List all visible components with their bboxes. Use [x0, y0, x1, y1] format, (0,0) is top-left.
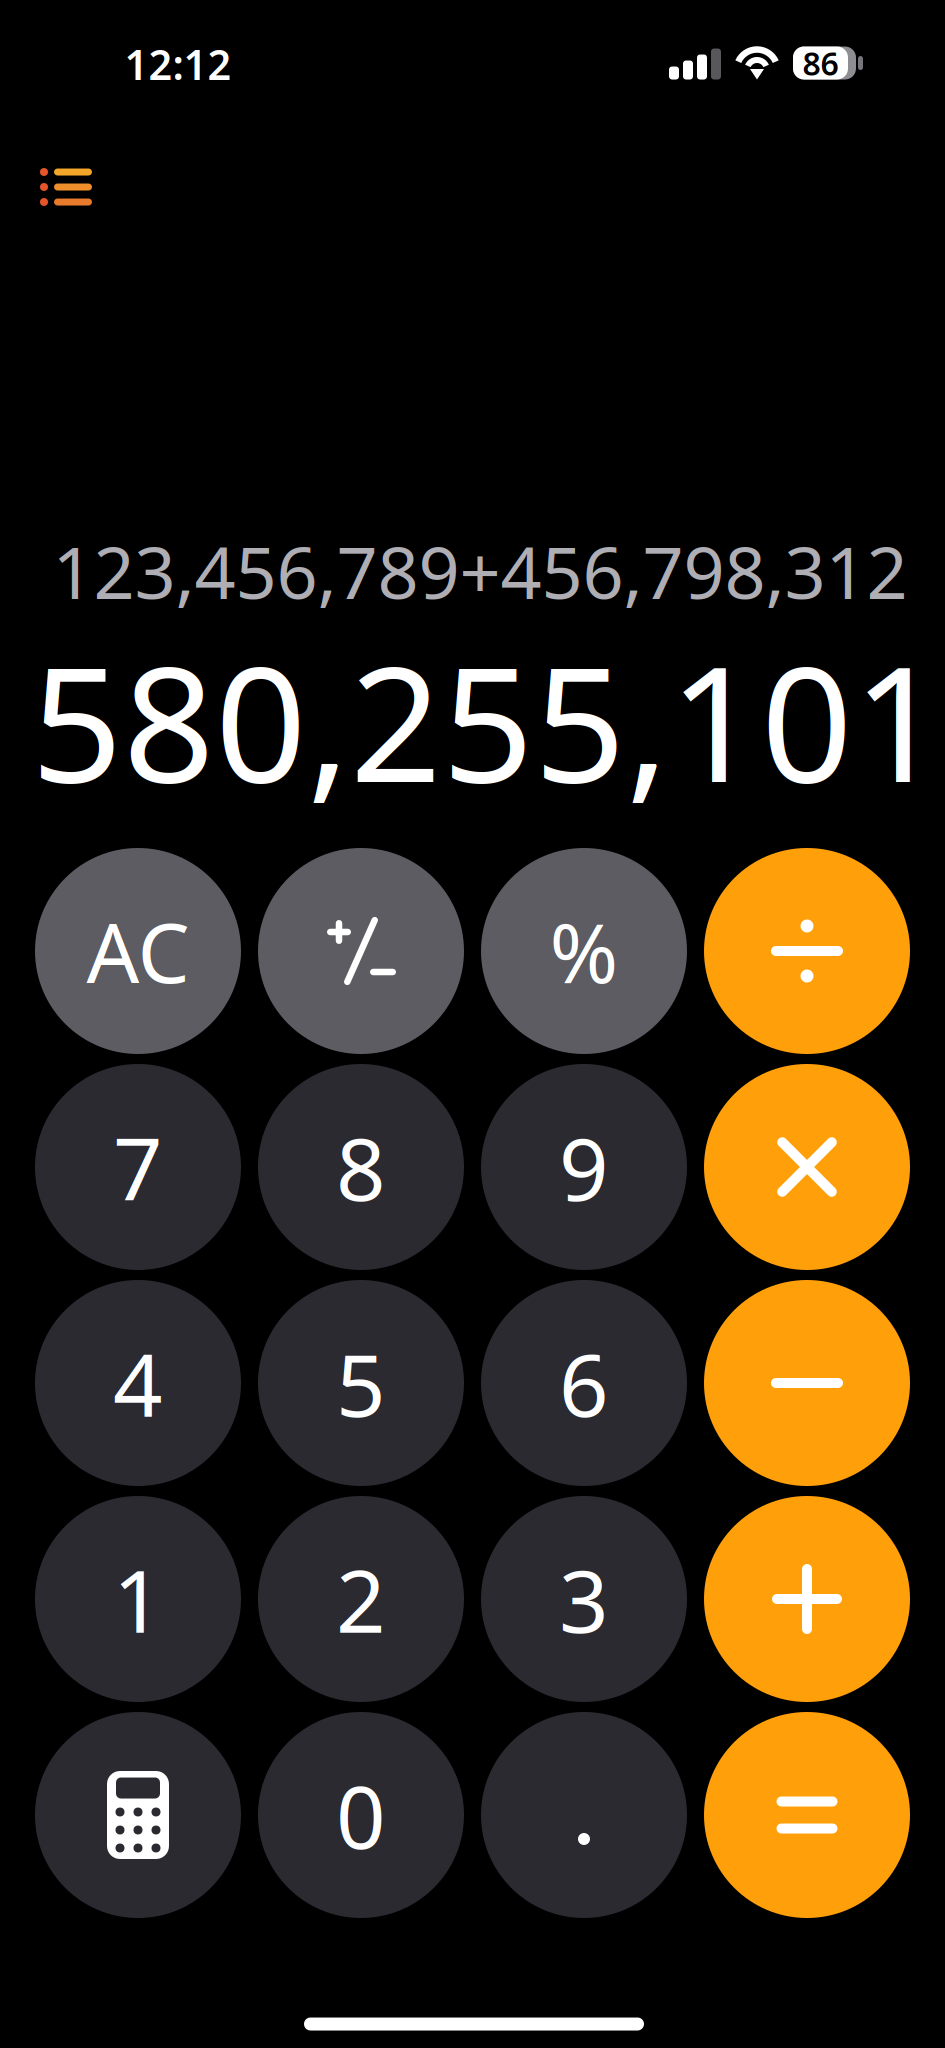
button[interactable]: Decimal point — [481, 1712, 687, 1918]
button[interactable]: AC — [35, 848, 241, 1054]
button[interactable]: 6 — [481, 1280, 687, 1486]
button[interactable]: Divide — [704, 848, 910, 1054]
staticText: 2 — [336, 1541, 386, 1657]
staticText: 1 — [113, 1541, 163, 1657]
button[interactable]: Subtract — [704, 1280, 910, 1486]
staticText: AC — [86, 896, 189, 1006]
button[interactable]: 7 — [35, 1064, 241, 1270]
button[interactable]: 8 — [258, 1064, 464, 1270]
button[interactable]: Add — [704, 1496, 910, 1702]
staticText: % — [549, 896, 618, 1006]
staticText: 9 — [559, 1109, 609, 1225]
staticText: 86 — [802, 42, 838, 84]
staticText: 7 — [113, 1109, 163, 1225]
staticText: 123,456,789+456,798,312 — [52, 523, 907, 619]
button[interactable]: 9 — [481, 1064, 687, 1270]
staticText: 6 — [559, 1325, 609, 1441]
staticText: 8 — [336, 1109, 386, 1225]
button[interactable]: 4 — [35, 1280, 241, 1486]
staticText: 12:12 — [124, 37, 231, 91]
button[interactable]: 5 — [258, 1280, 464, 1486]
staticText: 0 — [336, 1757, 386, 1873]
staticText: 5 — [336, 1325, 386, 1441]
button[interactable]: Calculator mode — [35, 1712, 241, 1918]
staticText: 3 — [559, 1541, 609, 1657]
staticText: 580,255,101 — [31, 614, 945, 826]
button[interactable]: Plus or minus — [258, 848, 464, 1054]
button[interactable]: % — [481, 848, 687, 1054]
button[interactable]: Equals — [704, 1712, 910, 1918]
button[interactable]: 1 — [35, 1496, 241, 1702]
button[interactable]: Multiply — [704, 1064, 910, 1270]
staticText: 4 — [113, 1325, 163, 1441]
button[interactable]: 0 — [258, 1712, 464, 1918]
button[interactable]: 2 — [258, 1496, 464, 1702]
button[interactable]: 3 — [481, 1496, 687, 1702]
button[interactable]: History — [27, 150, 105, 224]
